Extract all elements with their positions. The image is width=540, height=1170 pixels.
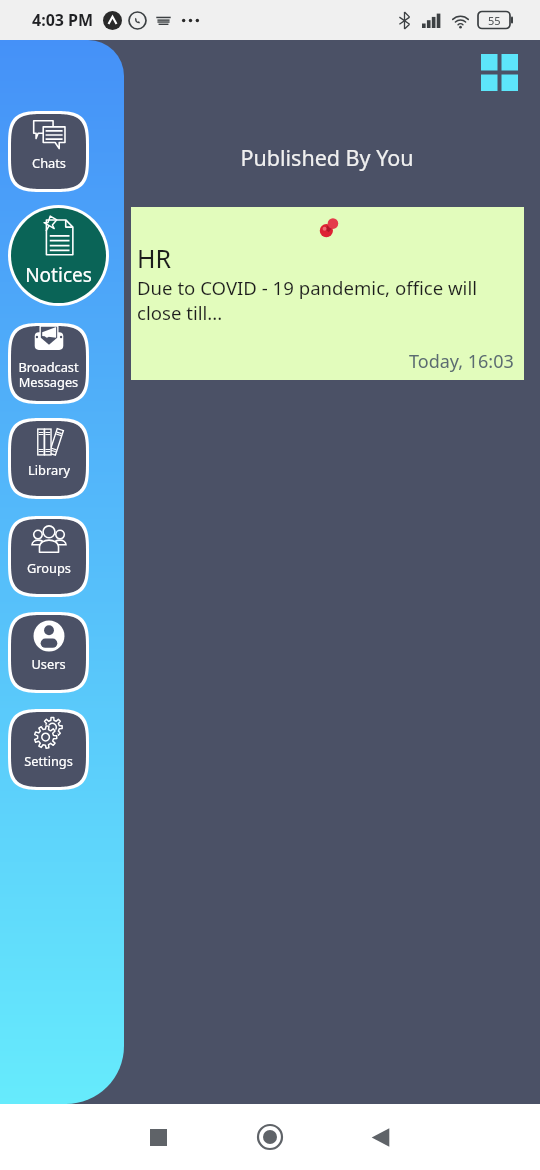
button[interactable]: Settings: [8, 709, 89, 790]
staticText: Today, 16:03: [409, 349, 514, 374]
button[interactable]: Groups: [8, 516, 89, 597]
button[interactable]: Grid view: [477, 50, 521, 94]
button[interactable]: Users: [8, 612, 89, 693]
staticText: Library: [28, 461, 70, 478]
staticText: Settings: [24, 752, 73, 769]
staticText: Published By You: [131, 143, 523, 172]
button[interactable]: Notices: [8, 205, 109, 306]
staticText: Chats: [32, 154, 66, 171]
staticText: Broadcast Messages: [18, 358, 79, 391]
staticText: Notices: [25, 262, 92, 288]
button[interactable]: Back: [356, 1113, 404, 1161]
button[interactable]: Chats: [8, 111, 89, 192]
staticText: Users: [31, 655, 66, 672]
button[interactable]: HR: [131, 207, 524, 380]
staticText: Groups: [27, 559, 71, 576]
button[interactable]: Broadcast Messages: [8, 323, 89, 404]
staticText: 4:03 PM: [32, 9, 94, 31]
button[interactable]: Home: [246, 1113, 294, 1161]
staticText: HR: [137, 241, 172, 275]
staticText: Due to COVID - 19 pandemic, office will …: [137, 275, 489, 326]
button[interactable]: Library: [8, 418, 89, 499]
button[interactable]: Recents: [134, 1113, 182, 1161]
staticText: 55: [488, 13, 501, 28]
